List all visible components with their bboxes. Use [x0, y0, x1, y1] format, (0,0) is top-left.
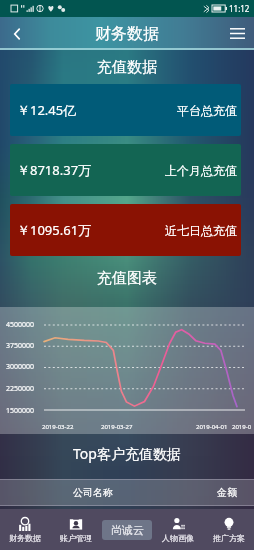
staticText: 推广方案 [213, 533, 245, 543]
staticText: 4500000 [6, 320, 35, 330]
staticText: 公司名称 [73, 486, 113, 499]
staticText: 近七日总充值 [165, 223, 237, 238]
button[interactable]: 财务数据 [0, 509, 50, 550]
button[interactable]: ￥1095.61万 [10, 204, 241, 256]
staticText: 3000000 [6, 362, 35, 372]
staticText: 1500000 [6, 406, 35, 416]
staticText: 上个月总充值 [165, 163, 237, 178]
staticText: 财务数据 [95, 24, 159, 44]
staticText: 2019-03-27 [101, 423, 133, 431]
staticText: 金额 [217, 486, 237, 499]
staticText: 人物画像 [162, 533, 194, 543]
button[interactable]: 人物画像 [152, 509, 203, 550]
button[interactable]: Menu [220, 17, 254, 50]
staticText: Top客户充值数据 [73, 444, 181, 463]
button[interactable]: Back [0, 17, 34, 50]
staticText: 2019-04-01 [196, 423, 228, 431]
staticText: 11:12 [229, 3, 250, 14]
staticText: 2019-04-05 [232, 423, 254, 431]
staticText: 账户管理 [60, 533, 92, 543]
staticText: 平台总充值 [177, 103, 237, 118]
button[interactable]: 尚诚云 [102, 520, 152, 540]
staticText: 充值数据 [97, 58, 157, 77]
staticText: 财务数据 [9, 533, 41, 543]
staticText: ￥8718.37万 [17, 161, 92, 179]
staticText: 3750000 [6, 341, 35, 351]
button[interactable]: 推广方案 [203, 509, 254, 550]
staticText: 2019-03-22 [42, 423, 74, 431]
button[interactable]: ￥12.45亿 [10, 84, 241, 136]
staticText: 充值图表 [97, 269, 157, 288]
button[interactable]: ￥8718.37万 [10, 144, 241, 196]
staticText: ￥1095.61万 [17, 221, 92, 239]
staticText: ￥12.45亿 [17, 101, 77, 119]
staticText: 尚诚云 [111, 523, 144, 537]
button[interactable]: 账户管理 [50, 509, 101, 550]
staticText: 2250000 [6, 384, 35, 394]
